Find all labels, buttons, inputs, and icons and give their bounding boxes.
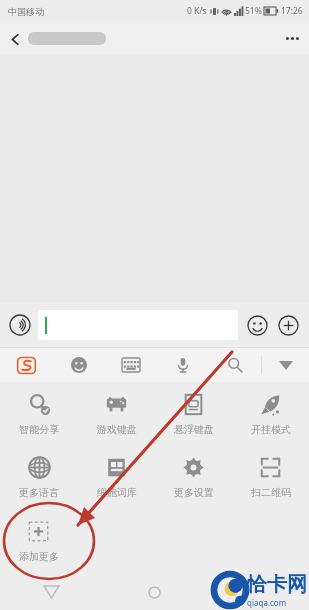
staticText: 游戏键盘 [97,423,137,436]
button[interactable]: 扫二维码 [232,446,309,508]
button[interactable] [38,310,238,340]
staticText: 智能分享 [19,423,59,436]
button[interactable]: Recents [206,574,309,610]
staticText: 悬浮键盘 [174,423,214,436]
staticText: 开挂模式 [251,423,291,436]
button[interactable]: Back [0,24,30,54]
button[interactable]: Voice message [7,312,33,338]
staticText: qiaqa.com [247,597,287,608]
staticText: 0 K/s [187,5,207,17]
button[interactable]: Stickers [53,348,105,382]
button[interactable]: 更多语言 [0,446,78,508]
button[interactable]: Emoji [244,312,271,339]
button[interactable]: Voice input [157,348,209,382]
button[interactable]: More options [275,22,309,55]
button[interactable]: 添加更多 [0,508,77,574]
button[interactable]: Search [209,348,261,382]
button[interactable]: 游戏键盘 [78,382,155,446]
staticText: 细胞词库 [97,486,137,499]
button[interactable]: Sogou input [0,348,53,382]
staticText: 更多语言 [19,486,59,499]
button[interactable]: Home [103,574,206,610]
button[interactable]: 智能分享 [0,382,78,446]
button[interactable]: 悬浮键盘 [155,382,232,446]
button[interactable]: Back [0,574,103,610]
staticText: 恰卡网 [247,572,307,597]
button[interactable]: Collapse [262,348,309,382]
staticText: 扫二维码 [251,486,291,499]
button[interactable]: 更多设置 [155,446,232,508]
staticText: 添加更多 [19,550,59,563]
button[interactable]: 细胞词库 [78,446,155,508]
staticText: 中国移动 [8,6,44,17]
staticText: 51% [245,5,262,17]
staticText: 17:26 [281,5,303,17]
button[interactable]: More [275,312,302,339]
button[interactable]: Keyboard [105,348,157,382]
staticText: 更多设置 [174,486,214,499]
button[interactable]: 开挂模式 [232,382,309,446]
